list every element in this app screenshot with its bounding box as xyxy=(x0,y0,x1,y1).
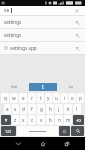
staticText: b xyxy=(49,117,52,123)
button[interactable]: i xyxy=(61,93,68,103)
button[interactable]: b xyxy=(46,115,54,125)
button[interactable]: l xyxy=(73,104,81,114)
staticText: t xyxy=(40,95,42,101)
button[interactable]: v xyxy=(37,115,45,125)
button[interactable]: n xyxy=(55,115,63,125)
button[interactable]: a xyxy=(4,104,11,114)
staticText: h xyxy=(49,106,52,112)
button[interactable]: w xyxy=(10,93,18,103)
staticText: a xyxy=(6,106,9,112)
button[interactable]: se xyxy=(0,6,85,15)
staticText: q xyxy=(4,95,7,101)
staticText: v xyxy=(40,117,43,123)
staticText: u xyxy=(55,95,58,101)
button[interactable]: z xyxy=(12,115,19,125)
button[interactable]: Insert suggestion xyxy=(73,18,82,27)
staticText: I xyxy=(42,84,44,90)
staticText: d xyxy=(22,106,25,112)
staticText: the xyxy=(11,84,18,90)
staticText: 123 xyxy=(5,129,12,134)
button[interactable]: e xyxy=(19,93,27,103)
staticText: p xyxy=(79,95,82,101)
staticText: o xyxy=(71,95,74,101)
button[interactable]: c xyxy=(28,115,36,125)
button[interactable]: y xyxy=(45,93,52,103)
staticText: l xyxy=(76,106,78,112)
staticText: n xyxy=(58,117,61,123)
staticText: w xyxy=(12,95,16,101)
button[interactable]: to xyxy=(57,82,85,92)
button[interactable]: k xyxy=(64,104,72,114)
button[interactable]: Insert suggestion xyxy=(73,44,82,53)
staticText: e xyxy=(22,95,25,101)
button[interactable]: g xyxy=(37,104,45,114)
button[interactable]: Space xyxy=(17,126,58,136)
button[interactable]: the xyxy=(0,82,29,92)
button[interactable]: Emoji xyxy=(59,126,70,136)
button[interactable]: 123 xyxy=(1,126,16,136)
staticText: settings app xyxy=(10,45,73,51)
button[interactable]: t xyxy=(37,93,44,103)
staticText: r xyxy=(31,95,33,101)
staticText: x xyxy=(22,117,25,123)
button[interactable]: q xyxy=(1,93,9,103)
button[interactable]: h xyxy=(46,104,54,114)
staticText: se xyxy=(4,7,10,14)
button[interactable]: f xyxy=(28,104,36,114)
button[interactable]: settings app xyxy=(0,42,85,54)
button[interactable]: p xyxy=(77,93,84,103)
staticText: y xyxy=(47,95,50,101)
staticText: i xyxy=(64,95,66,101)
staticText: to xyxy=(69,84,74,90)
staticText: s xyxy=(14,106,17,112)
staticText: settings xyxy=(4,32,73,38)
staticText: c xyxy=(31,117,34,123)
button[interactable]: s xyxy=(12,104,19,114)
button[interactable]: Recent apps xyxy=(55,137,79,150)
button[interactable]: I xyxy=(29,83,57,91)
button[interactable]: o xyxy=(69,93,76,103)
button[interactable]: Backspace xyxy=(73,115,84,125)
button[interactable]: x xyxy=(20,115,27,125)
button[interactable]: Home xyxy=(31,137,55,150)
staticText: j xyxy=(58,106,60,112)
button[interactable]: u xyxy=(53,93,60,103)
staticText: g xyxy=(40,106,43,112)
button[interactable]: settings xyxy=(0,16,85,28)
button[interactable]: d xyxy=(20,104,27,114)
button[interactable]: Search xyxy=(71,126,84,136)
button[interactable]: m xyxy=(64,115,72,125)
button[interactable]: Shift xyxy=(1,115,11,125)
button[interactable]: Insert suggestion xyxy=(73,31,82,40)
button[interactable]: Clear query xyxy=(73,7,81,15)
staticText: m xyxy=(66,117,71,123)
staticText: settings xyxy=(4,19,73,25)
button[interactable]: r xyxy=(28,93,36,103)
staticText: z xyxy=(14,117,17,123)
staticText: f xyxy=(31,106,33,112)
button[interactable]: settings xyxy=(0,29,85,41)
button[interactable]: j xyxy=(55,104,63,114)
button[interactable]: Back xyxy=(6,137,31,150)
staticText: k xyxy=(67,106,70,112)
